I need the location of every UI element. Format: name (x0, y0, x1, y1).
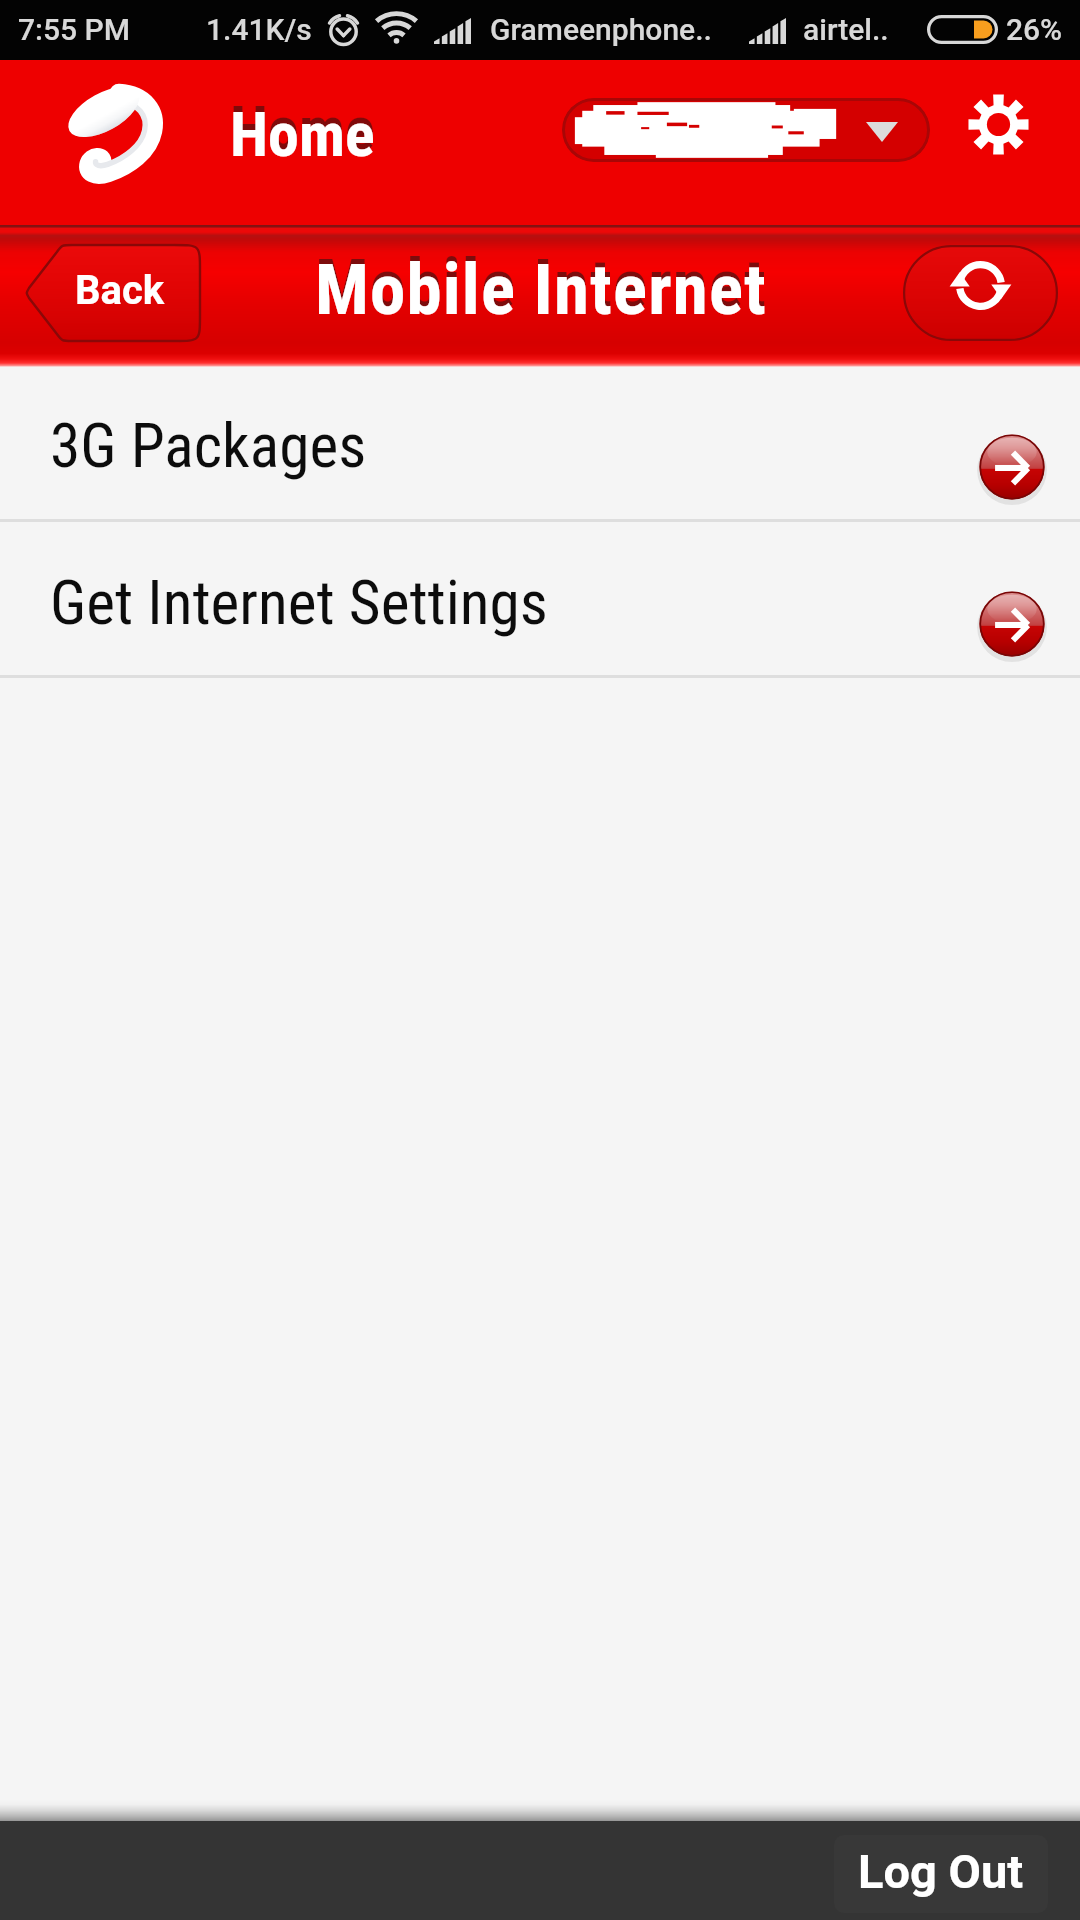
staticText: 3G Packages (50, 410, 367, 482)
button[interactable]: Refresh (903, 245, 1058, 341)
staticText: Back (75, 267, 165, 314)
button[interactable]: Back (26, 245, 200, 341)
staticText: Home (230, 98, 375, 171)
button[interactable]: Get Internet Settings (0, 522, 1080, 675)
button[interactable]: Change number (562, 98, 930, 162)
button[interactable]: Settings (958, 84, 1038, 164)
staticText: Mobile Internet (315, 248, 768, 331)
staticText: 7:55 PM (18, 12, 131, 47)
staticText: 1.41K/s (206, 12, 312, 47)
button[interactable]: Home (230, 98, 375, 171)
staticText: Grameenphone.. (490, 12, 712, 47)
staticText: airtel.. (803, 12, 889, 47)
staticText: Log Out (858, 1844, 1024, 1899)
button[interactable]: Log Out (834, 1835, 1048, 1913)
staticText: Home (230, 92, 375, 165)
button[interactable]: 3G Packages (0, 367, 1080, 519)
staticText: 26% (1006, 12, 1063, 47)
staticText: Get Internet Settings (50, 567, 548, 639)
staticText: Mobile Internet (315, 243, 768, 326)
